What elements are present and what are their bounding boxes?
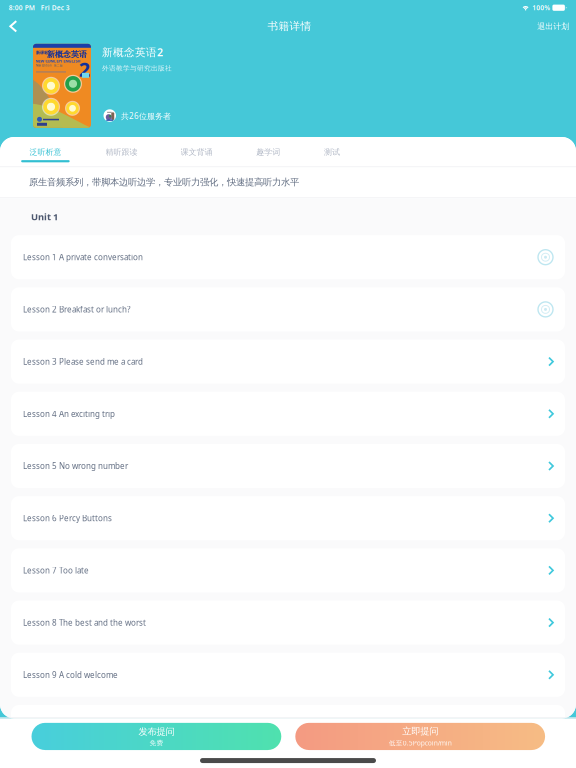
button[interactable]: Lesson 4 An exciting trip — [11, 392, 565, 436]
staticText: 新概念英语 — [47, 49, 87, 59]
staticText: 立即提问 — [402, 725, 438, 737]
staticText: Unit 1 — [31, 210, 58, 223]
staticText: 泛听析意 — [29, 147, 61, 157]
staticText: 测试 — [324, 147, 340, 157]
staticText: Lesson 1 A private conversation — [23, 252, 143, 262]
button[interactable]: Lesson 6 Percy Buttons — [11, 496, 565, 540]
staticText: New Edition 第二版 — [36, 64, 63, 67]
button[interactable]: 立即提问 — [295, 723, 545, 750]
button[interactable]: Lesson 10 Not for jazz — [11, 705, 565, 749]
button[interactable]: Lesson 7 Too late — [11, 548, 565, 592]
button[interactable]: Lesson 5 No wrong number — [11, 444, 565, 488]
staticText: Fri Dec 3 — [41, 3, 70, 12]
staticText: 低至0.5Popcoin/min — [389, 739, 452, 747]
button[interactable]: 退出计划 — [532, 17, 574, 35]
staticText: 免费 — [149, 739, 163, 747]
button[interactable]: 测试 — [301, 137, 363, 166]
staticText: Lesson 6 Percy Buttons — [23, 513, 112, 523]
staticText: Lesson 5 No wrong number — [23, 461, 128, 471]
staticText: 精听跟读 — [105, 147, 137, 157]
button[interactable]: 泛听析意 — [14, 137, 76, 166]
staticText: 发布提问 — [138, 726, 174, 737]
button[interactable]: Lesson 2 Breakfast or lunch? — [11, 287, 565, 331]
button[interactable]: Lesson 8 The best and the worst — [11, 601, 565, 645]
staticText: 外语教学与研究出版社 — [102, 64, 172, 72]
staticText: Lesson 7 Too late — [23, 565, 89, 576]
staticText: 趣学词 — [256, 147, 280, 157]
button[interactable]: Lesson 9 A cold welcome — [11, 653, 565, 697]
staticText: Lesson 8 The best and the worst — [23, 617, 146, 628]
staticText: Lesson 4 An exciting trip — [23, 408, 115, 419]
staticText: NEW CONCEPT ENGLISH — [35, 58, 80, 64]
staticText: 退出计划 — [537, 21, 569, 31]
button[interactable]: Lesson 3 Please send me a card — [11, 340, 565, 384]
staticText: 原生音频系列，带脚本边听边学，专业听力强化，快速提高听力水平 — [29, 176, 299, 188]
staticText: 共26位服务者 — [121, 111, 171, 121]
staticText: 新概念英语2 — [102, 45, 163, 59]
staticText: 2 — [79, 56, 90, 82]
staticText: 100% — [532, 3, 550, 12]
staticText: 新课标 — [36, 50, 48, 55]
staticText: 课文背诵 — [180, 147, 212, 157]
button[interactable]: Back — [0, 13, 27, 39]
button[interactable]: 课文背诵 — [165, 137, 227, 166]
staticText: Lesson 10 Not for jazz — [23, 722, 107, 732]
button[interactable]: 精听跟读 — [90, 137, 152, 166]
staticText: 8:00 PM — [9, 3, 35, 12]
staticText: Lesson 2 Breakfast or lunch? — [23, 304, 130, 315]
button[interactable]: Lesson 1 A private conversation — [11, 235, 565, 279]
staticText: Lesson 9 A cold welcome — [23, 669, 118, 680]
staticText: 书籍详情 — [267, 20, 311, 33]
button[interactable]: 趣学词 — [237, 137, 299, 166]
staticText: Lesson 3 Please send me a card — [23, 356, 143, 367]
button[interactable]: 发布提问 — [31, 723, 281, 750]
